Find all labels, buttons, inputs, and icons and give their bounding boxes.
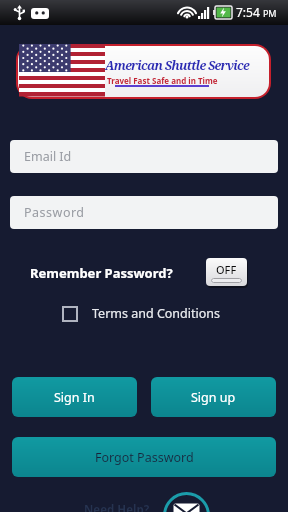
staticText: Travel Fast Safe and in Time — [107, 75, 218, 86]
staticText: 7:54 PM — [236, 4, 277, 20]
staticText: Email Id — [24, 148, 72, 165]
button[interactable]: Sign In — [12, 377, 137, 417]
button[interactable] — [163, 492, 210, 512]
staticText: Sign In — [54, 389, 95, 406]
staticText: Password — [24, 204, 85, 221]
staticText: OFF — [216, 262, 237, 277]
staticText: Terms and Conditions — [92, 305, 221, 322]
button[interactable]: Password — [10, 196, 278, 229]
staticText: Forgot Password — [95, 449, 194, 466]
staticText: Need Help? — [84, 502, 150, 512]
button[interactable]: Sign up — [151, 377, 276, 417]
staticText: American Shuttle Service — [105, 57, 249, 74]
button[interactable]: Terms and Conditions — [62, 305, 221, 322]
staticText: Sign up — [191, 389, 236, 406]
button[interactable]: Email Id — [10, 140, 278, 173]
button[interactable]: OFF — [206, 258, 248, 288]
button[interactable]: Forgot Password — [12, 437, 276, 477]
staticText: Remember Password? — [30, 264, 173, 282]
